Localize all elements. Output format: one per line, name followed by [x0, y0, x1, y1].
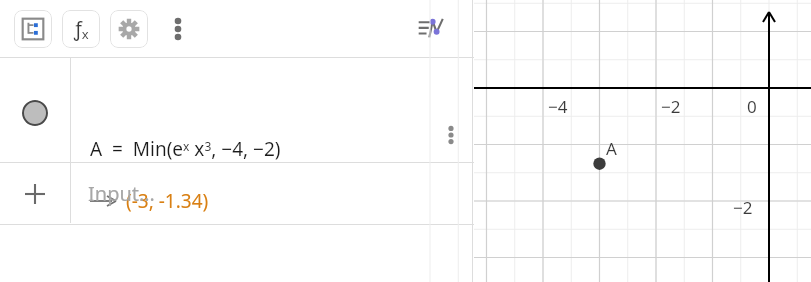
staticText: ƒx	[74, 16, 89, 43]
staticText: A = Min(ex x3, −4, −2)	[90, 136, 281, 162]
button[interactable]: Algebra view	[14, 10, 52, 48]
staticText: (-3, -1.34)	[126, 188, 209, 214]
button[interactable]: Functions	[62, 10, 100, 48]
button[interactable]: Graphing view	[414, 12, 448, 46]
button[interactable]: Add input	[0, 163, 474, 224]
button[interactable]: Toggle visibility of A	[22, 100, 48, 126]
button[interactable]: More options	[162, 13, 194, 45]
staticText: −2	[661, 95, 681, 118]
button[interactable]: Row options	[436, 120, 466, 150]
button[interactable]: Settings	[110, 10, 148, 48]
staticText: −2	[733, 196, 753, 219]
button[interactable]: Toggle visibility of A	[0, 58, 474, 162]
staticText: 0	[747, 95, 757, 118]
staticText: −4	[548, 95, 568, 118]
button[interactable]: Add input	[22, 181, 48, 207]
staticText: Input…	[88, 180, 155, 207]
staticText: A	[606, 137, 617, 160]
